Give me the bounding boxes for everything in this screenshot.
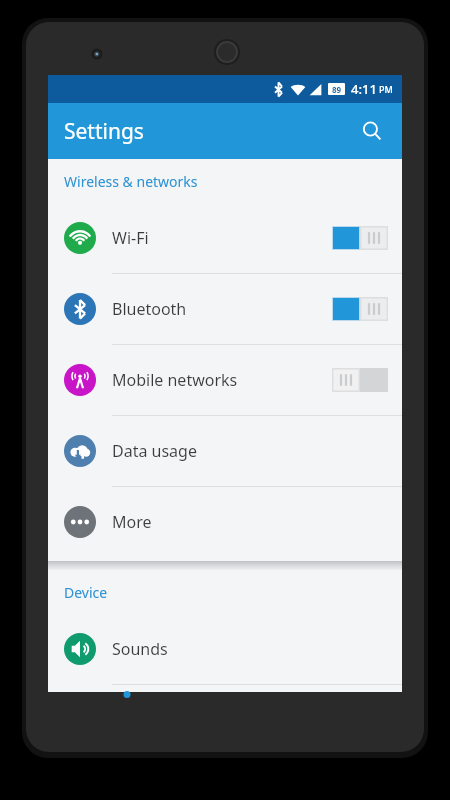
button[interactable]: Sounds xyxy=(48,614,402,684)
staticText: 89 xyxy=(332,84,342,95)
staticText: Wi-Fi xyxy=(112,227,332,249)
button[interactable]: More xyxy=(48,487,402,557)
button[interactable]: Mobile networks xyxy=(48,345,402,415)
button[interactable] xyxy=(332,226,388,250)
staticText: PM xyxy=(379,83,393,95)
button[interactable]: Bluetooth xyxy=(48,274,402,344)
staticText: Mobile networks xyxy=(112,369,332,391)
button[interactable] xyxy=(332,368,388,392)
button[interactable]: Search xyxy=(352,111,392,151)
staticText: Wireless & networks xyxy=(64,172,198,191)
staticText: Bluetooth xyxy=(112,298,332,320)
staticText: Settings xyxy=(64,117,144,146)
staticText: Device xyxy=(64,583,108,602)
staticText: 4:11 xyxy=(351,80,377,98)
staticText: Data usage xyxy=(112,440,388,462)
button[interactable] xyxy=(332,297,388,321)
staticText: More xyxy=(112,511,388,533)
button[interactable]: Wi-Fi xyxy=(48,203,402,273)
staticText: Sounds xyxy=(112,638,388,660)
button[interactable]: Data usage xyxy=(48,416,402,486)
